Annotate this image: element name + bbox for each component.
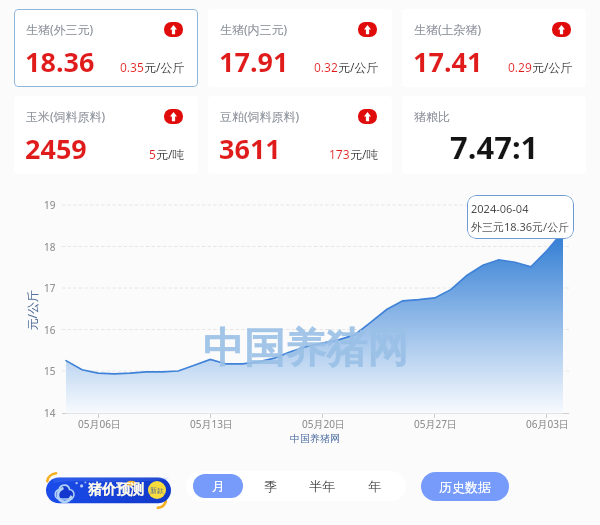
button[interactable]: 猪粮比 xyxy=(402,96,586,174)
button[interactable]: 猪价预测 xyxy=(46,475,171,505)
staticText: 猪粮比 xyxy=(414,109,450,124)
staticText: 豆粕(饲料原料) xyxy=(220,108,300,124)
button[interactable]: 半年 xyxy=(297,474,347,498)
staticText: 2024-06-04 xyxy=(471,201,529,216)
staticText: 元/公斤 xyxy=(23,289,39,330)
staticText: 17.91 xyxy=(219,43,289,80)
other: 价格上涨 xyxy=(358,22,377,37)
other: 价格上涨 xyxy=(358,109,377,124)
button[interactable]: 生猪(内三元) xyxy=(208,9,392,87)
staticText: 元/公斤 xyxy=(338,59,379,75)
staticText: 05月13日 xyxy=(190,417,233,431)
button[interactable]: 生猪(土杂猪) xyxy=(402,9,586,87)
staticText: 0.35 xyxy=(120,59,144,75)
staticText: 17.41 xyxy=(413,43,483,80)
button[interactable]: 历史数据 xyxy=(421,472,509,501)
staticText: 5 xyxy=(149,146,156,162)
other: 价格上涨 xyxy=(164,22,183,37)
button[interactable]: 年 xyxy=(349,474,399,498)
staticText: 历史数据 xyxy=(439,479,491,495)
staticText: 05月27日 xyxy=(414,417,457,431)
staticText: 猪价预测 xyxy=(88,481,144,499)
button[interactable]: 玉米(饲料原料) xyxy=(14,96,198,174)
staticText: 14 xyxy=(44,406,56,420)
staticText: 06月03日 xyxy=(526,417,569,431)
staticText: 玉米(饲料原料) xyxy=(26,108,106,124)
staticText: 新款 xyxy=(150,486,164,495)
staticText: 半年 xyxy=(309,478,335,494)
staticText: 外三元18.36元/公斤 xyxy=(471,219,570,234)
staticText: 生猪(土杂猪) xyxy=(414,21,482,37)
staticText: 元/公斤 xyxy=(532,59,573,75)
staticText: 月 xyxy=(212,478,225,494)
staticText: 18.36 xyxy=(25,43,95,80)
staticText: 0.32 xyxy=(314,59,338,75)
staticText: 17 xyxy=(44,281,56,295)
staticText: 季 xyxy=(264,478,277,494)
staticText: 中国养猪网 xyxy=(203,323,408,375)
staticText: 元/公斤 xyxy=(144,59,185,75)
staticText: 05月20日 xyxy=(302,417,345,431)
staticText: 中国养猪网 xyxy=(290,432,340,445)
staticText: 生猪(外三元) xyxy=(26,21,94,37)
staticText: 173 xyxy=(329,146,350,162)
button[interactable]: 豆粕(饲料原料) xyxy=(208,96,392,174)
staticText: 生猪(内三元) xyxy=(220,21,288,37)
staticText: 16 xyxy=(44,323,56,337)
staticText: 元/吨 xyxy=(156,146,185,162)
staticText: 7.47:1 xyxy=(450,126,539,168)
button[interactable]: 生猪(外三元) xyxy=(14,9,198,87)
staticText: 2459 xyxy=(25,130,87,167)
button[interactable]: 月 xyxy=(193,474,243,498)
staticText: 元/吨 xyxy=(350,146,379,162)
staticText: 18 xyxy=(44,240,56,254)
other: 价格上涨 xyxy=(164,109,183,124)
staticText: 0.29 xyxy=(508,59,532,75)
staticText: 19 xyxy=(44,198,56,212)
staticText: 05月06日 xyxy=(78,417,121,431)
staticText: 3611 xyxy=(219,130,281,167)
other: 价格上涨 xyxy=(552,22,571,37)
button[interactable]: 季 xyxy=(245,474,295,498)
staticText: 年 xyxy=(368,478,381,494)
staticText: 15 xyxy=(44,364,56,378)
